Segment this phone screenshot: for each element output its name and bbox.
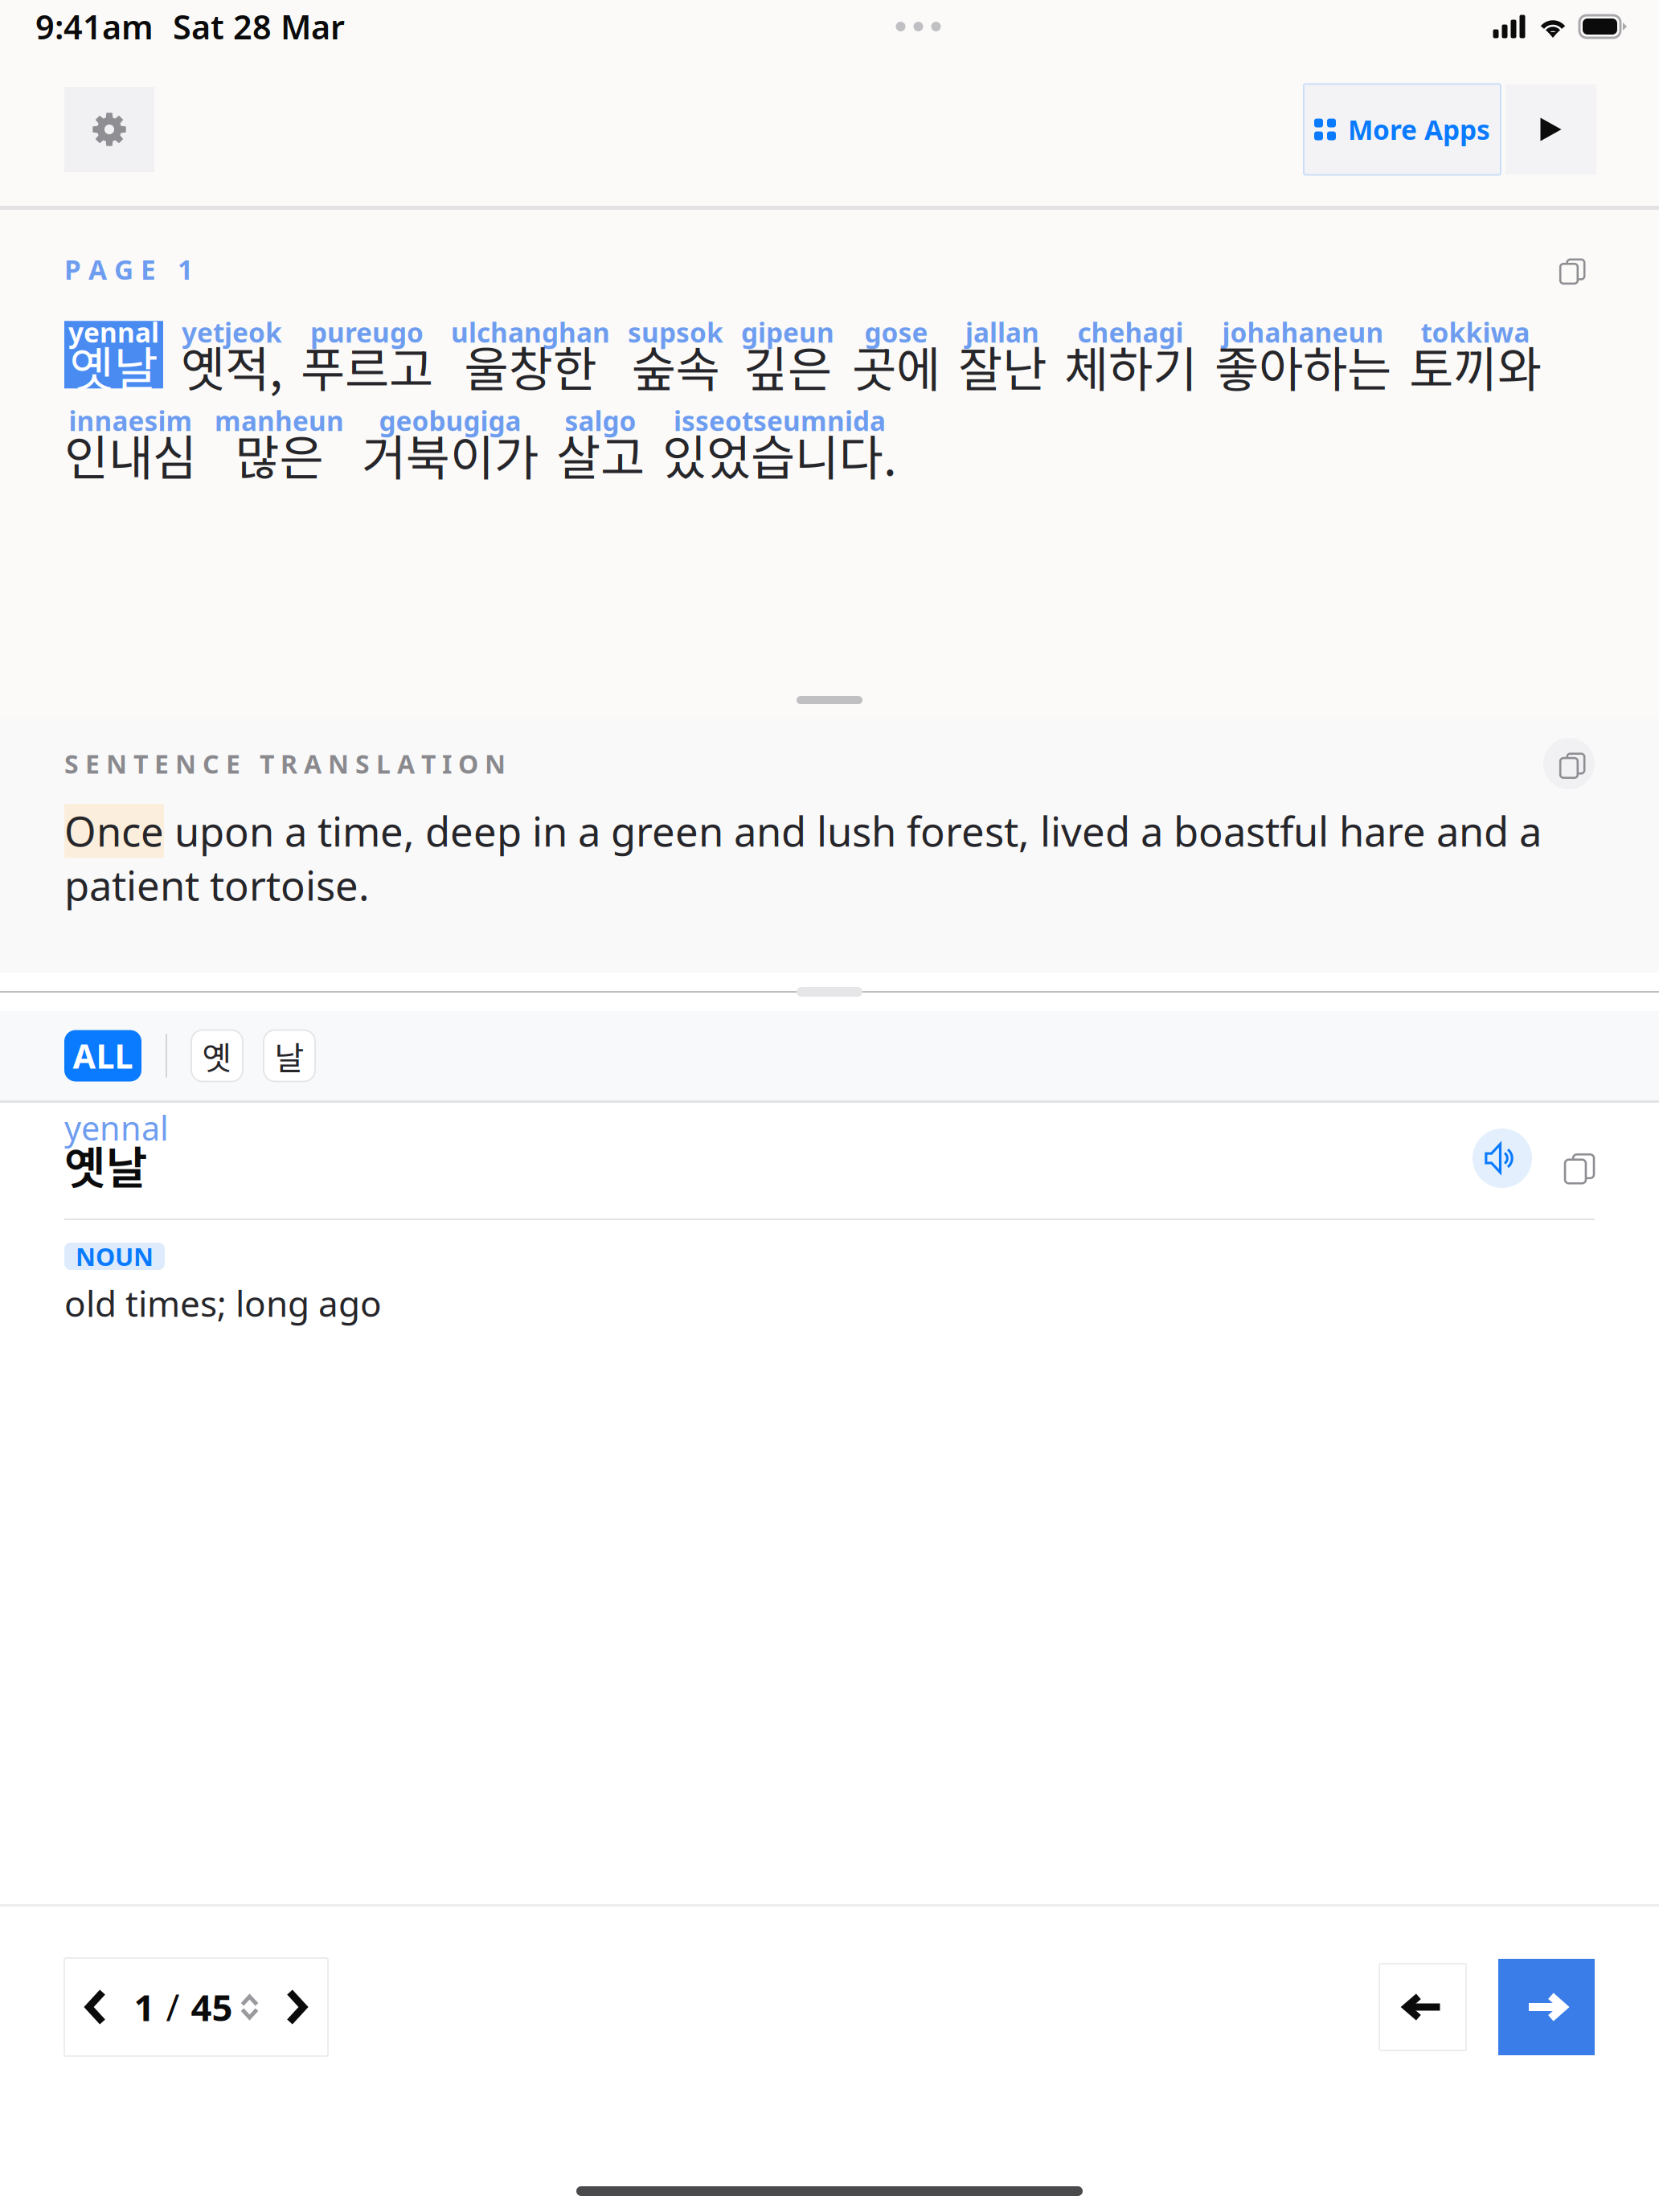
- staticText: 좋아하는: [1215, 331, 1391, 401]
- staticText: Once upon a time, deep in a green and lu…: [64, 804, 1542, 912]
- staticText: 체하기: [1064, 331, 1197, 401]
- staticText: 살고: [556, 419, 645, 489]
- staticText: yennal: [64, 1106, 169, 1150]
- staticText: johahaneun: [1222, 314, 1384, 350]
- staticText: isseotseumnida: [674, 403, 886, 438]
- staticText: 옛: [202, 1032, 232, 1079]
- staticText: 옛날: [64, 1132, 148, 1197]
- button[interactable]: Copy translation: [1543, 738, 1595, 789]
- staticText: 1: [134, 1983, 155, 2031]
- button[interactable]: Settings: [64, 87, 154, 172]
- staticText: 토끼와: [1409, 331, 1542, 401]
- staticText: yennal: [68, 314, 159, 350]
- button[interactable]: Copy word: [1555, 1145, 1596, 1188]
- staticText: salgo: [565, 403, 636, 438]
- staticText: 45: [191, 1983, 233, 2031]
- staticText: gipeun: [741, 314, 834, 350]
- button[interactable]: Play sentence: [1505, 84, 1596, 174]
- staticText: tokkiwa: [1421, 314, 1530, 350]
- staticText: 있었습니다.: [662, 419, 897, 489]
- button[interactable]: Next: [1498, 1959, 1595, 2055]
- staticText: innaesim: [69, 403, 193, 438]
- staticText: jallan: [965, 314, 1039, 350]
- staticText: /: [166, 1983, 180, 2031]
- staticText: geobugiga: [379, 403, 521, 438]
- staticText: supsok: [628, 314, 723, 350]
- staticText: More Apps: [1348, 112, 1490, 147]
- button[interactable]: Play pronunciation: [1473, 1129, 1532, 1188]
- button[interactable]: More Apps: [1304, 84, 1501, 175]
- staticText: chehagi: [1077, 314, 1184, 350]
- staticText: manheun: [215, 403, 344, 438]
- staticText: ulchanghan: [451, 314, 610, 350]
- staticText: ALL: [73, 1034, 133, 1078]
- button[interactable]: Previous: [1379, 1964, 1466, 2050]
- staticText: yetjeok: [182, 314, 282, 350]
- staticText: 많은: [235, 419, 324, 489]
- button[interactable]: Copy sentence: [1551, 252, 1587, 287]
- staticText: 푸르고: [301, 331, 433, 401]
- staticText: Sat 28 Mar: [173, 5, 345, 49]
- button[interactable]: ALL: [64, 1030, 141, 1081]
- staticText: NOUN: [76, 1240, 154, 1273]
- staticText: pureugo: [310, 314, 424, 350]
- staticText: P A G E 1: [64, 252, 193, 287]
- staticText: 옛날: [70, 331, 158, 401]
- staticText: 곳에: [852, 331, 940, 401]
- staticText: 숲속: [631, 331, 720, 401]
- button[interactable]: 1: [64, 1958, 328, 2056]
- staticText: 울창한: [464, 331, 597, 401]
- button[interactable]: 옛: [191, 1030, 243, 1081]
- staticText: old times; long ago: [64, 1280, 382, 1327]
- staticText: 날: [274, 1032, 304, 1079]
- staticText: 인내심: [64, 419, 197, 489]
- staticText: gose: [864, 314, 928, 350]
- staticText: 거북이가: [362, 419, 539, 489]
- staticText: 옛적,: [181, 331, 283, 401]
- staticText: 9:41am: [35, 5, 154, 49]
- button[interactable]: 날: [264, 1030, 315, 1081]
- staticText: 잘난: [958, 331, 1047, 401]
- staticText: S E N T E N C E T R A N S L A T I O N: [64, 747, 506, 781]
- staticText: 깊은: [743, 331, 832, 401]
